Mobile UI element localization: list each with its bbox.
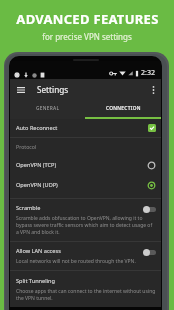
staticText: Split Tunneling bbox=[16, 277, 56, 285]
staticText: OpenVPN (TCP) bbox=[16, 161, 57, 169]
staticText: Local networks will not be routed throug… bbox=[16, 258, 136, 265]
staticText: Protocol bbox=[16, 143, 37, 150]
staticText: GENERAL bbox=[36, 105, 60, 112]
staticText: Allow LAN access bbox=[16, 247, 61, 255]
button[interactable]: More options bbox=[145, 79, 161, 100]
staticText: Scramble bbox=[16, 204, 41, 212]
button[interactable]: Auto Reconnect bbox=[10, 119, 161, 137]
staticText: Settings bbox=[37, 84, 69, 95]
staticText: Choose apps that can connect to the inte… bbox=[16, 288, 156, 302]
button[interactable]: Scramble bbox=[10, 199, 161, 241]
staticText: Scramble adds obfuscation to OpenVPN, al… bbox=[16, 215, 156, 236]
staticText: for precise VPN settings bbox=[42, 31, 132, 42]
staticText: 2:32 bbox=[141, 68, 155, 78]
staticText: CONNECTION bbox=[106, 105, 141, 112]
button[interactable]: Allow LAN access bbox=[10, 242, 161, 270]
button[interactable]: OpenVPN (TCP) bbox=[10, 155, 161, 175]
staticText: Auto Reconnect bbox=[16, 124, 58, 132]
staticText: OpenVPN (UDP) bbox=[16, 181, 58, 189]
button[interactable]: GENERAL bbox=[10, 100, 85, 117]
staticText: ADVANCED FEATURES bbox=[16, 10, 159, 28]
button[interactable]: Split Tunneling bbox=[10, 271, 161, 307]
button[interactable]: OpenVPN (UDP) bbox=[10, 175, 161, 195]
button[interactable]: Menu bbox=[10, 79, 31, 100]
button[interactable]: CONNECTION bbox=[85, 100, 161, 117]
